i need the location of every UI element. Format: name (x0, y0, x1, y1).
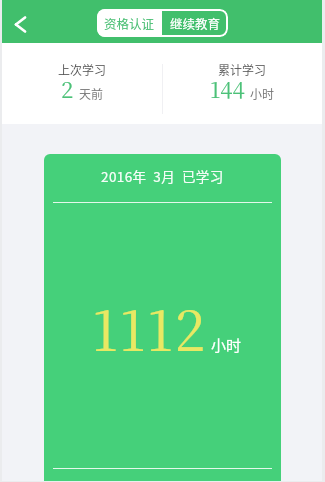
staticText: 小时 (250, 85, 275, 102)
button[interactable]: 继续教育 (162, 9, 228, 37)
button[interactable]: 上次学习 (2, 43, 162, 124)
button[interactable]: 累计学习 (162, 43, 322, 124)
staticText: 上次学习 (58, 61, 107, 78)
staticText: 2 (61, 73, 74, 105)
staticText: 天前 (79, 85, 104, 102)
staticText: 继续教育 (170, 14, 221, 32)
staticText: 资格认证 (104, 14, 155, 32)
staticText: 1112 (92, 288, 207, 367)
staticText: 2016年 3月 已学习 (101, 166, 224, 186)
button[interactable]: Back (2, 6, 38, 42)
staticText: 累计学习 (218, 61, 267, 78)
staticText: 小时 (211, 334, 242, 356)
button[interactable]: 资格认证 (97, 9, 162, 37)
staticText: 144 (210, 73, 245, 105)
